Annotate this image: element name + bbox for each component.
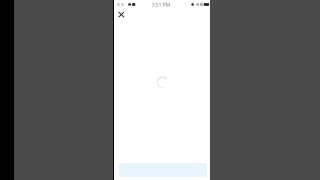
button[interactable]: Close [115,8,128,21]
staticText: 3:51 PM [151,1,170,8]
